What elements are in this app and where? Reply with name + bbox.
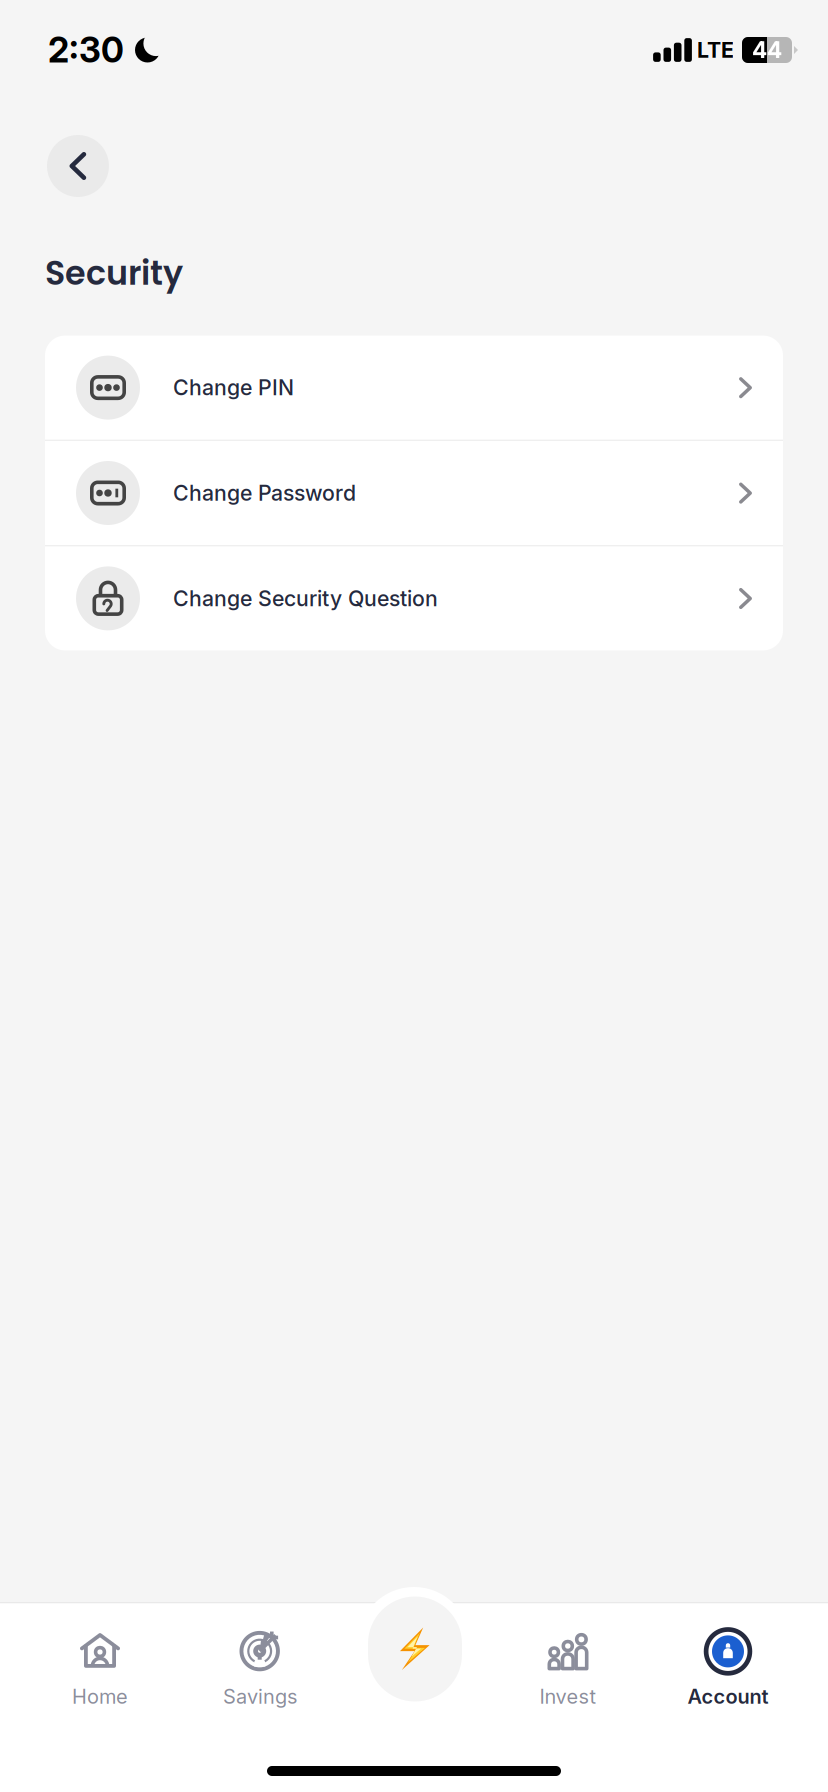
staticText: Home bbox=[72, 1684, 128, 1709]
staticText: Invest bbox=[539, 1684, 596, 1709]
button[interactable]: Invest bbox=[488, 1614, 648, 1726]
button[interactable]: Change PIN bbox=[45, 336, 783, 440]
button[interactable]: Savings bbox=[180, 1614, 340, 1726]
staticText: 44 bbox=[752, 36, 782, 64]
staticText: Savings bbox=[223, 1684, 297, 1709]
button[interactable]: Change Password bbox=[45, 441, 783, 545]
staticText: 2:30 bbox=[48, 29, 124, 71]
staticText: Change Password bbox=[173, 480, 356, 506]
staticText: Security bbox=[45, 250, 183, 296]
button[interactable]: Change Security Question bbox=[45, 546, 783, 650]
staticText: LTE bbox=[697, 37, 734, 63]
button[interactable]: Home bbox=[20, 1614, 180, 1726]
button[interactable]: Back bbox=[47, 135, 109, 197]
button[interactable]: Quick action bbox=[368, 1596, 462, 1701]
staticText: Change Security Question bbox=[173, 585, 438, 611]
staticText: Change PIN bbox=[173, 375, 294, 400]
staticText: Account bbox=[687, 1684, 768, 1709]
button[interactable]: Account bbox=[648, 1614, 808, 1726]
